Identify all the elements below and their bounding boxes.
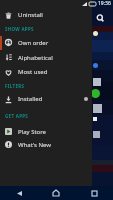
staticText: FILTERS bbox=[5, 83, 25, 89]
staticText: GET APPS bbox=[5, 113, 29, 119]
button[interactable]: Installed bbox=[0, 92, 92, 106]
button[interactable]: Search bbox=[96, 14, 105, 23]
button[interactable]: Home bbox=[46, 186, 66, 200]
staticText: Uninstall bbox=[18, 11, 43, 19]
button[interactable]: Own order bbox=[0, 35, 92, 50]
staticText: Own order bbox=[18, 39, 49, 47]
button[interactable]: Most used bbox=[0, 65, 92, 79]
button[interactable]: Play Store bbox=[0, 125, 92, 138]
staticText: 19:36 bbox=[98, 0, 111, 7]
button[interactable]: Alphabetical bbox=[0, 50, 92, 65]
button[interactable]: Uninstall bbox=[0, 7, 92, 23]
staticText: What's New bbox=[18, 141, 52, 149]
staticText: Most used bbox=[18, 68, 48, 76]
button[interactable]: Recents bbox=[84, 186, 104, 200]
button[interactable]: Back bbox=[9, 186, 29, 200]
staticText: SHOW APPS bbox=[5, 26, 34, 32]
staticText: Installed bbox=[18, 95, 43, 103]
button[interactable]: What's New bbox=[0, 138, 92, 151]
staticText: Play Store bbox=[18, 128, 46, 136]
staticText: Alphabetical bbox=[18, 54, 53, 62]
